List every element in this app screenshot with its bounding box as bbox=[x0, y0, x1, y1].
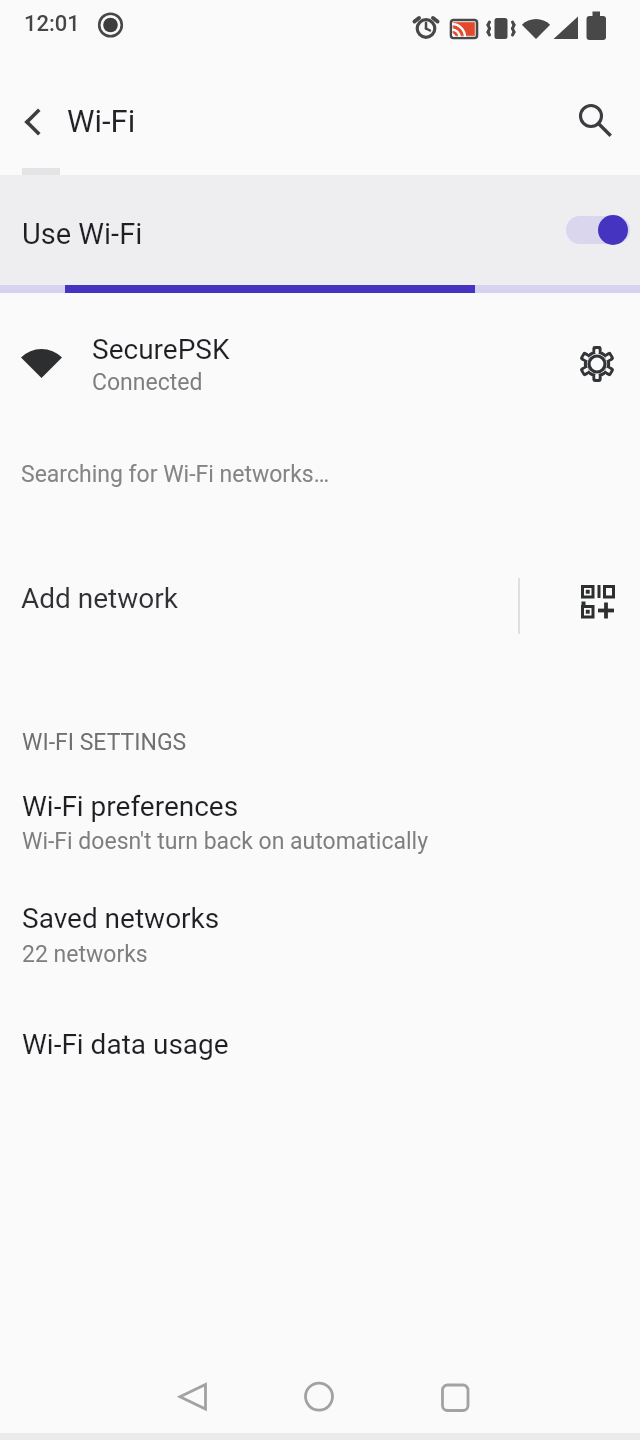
button[interactable] bbox=[163, 1366, 223, 1426]
staticText: WI-FI SETTINGS bbox=[22, 729, 187, 756]
button[interactable]: Add network bbox=[0, 556, 640, 648]
staticText: Searching for Wi-Fi networks… bbox=[21, 461, 330, 488]
staticText: 12:01 bbox=[24, 11, 80, 37]
staticText: Wi-Fi bbox=[67, 103, 136, 139]
staticText: SecurePSK bbox=[92, 333, 230, 366]
staticText: Wi-Fi doesn't turn back on automatically bbox=[22, 828, 429, 855]
staticText: Connected bbox=[92, 369, 203, 396]
staticText: Saved networks bbox=[22, 902, 220, 935]
staticText: Use Wi-Fi bbox=[22, 217, 143, 251]
button[interactable]: Saved networks bbox=[0, 883, 640, 983]
button[interactable]: Use Wi-Fi bbox=[0, 175, 640, 285]
button[interactable] bbox=[6, 96, 58, 148]
button[interactable]: Wi-Fi preferences bbox=[0, 770, 640, 870]
button[interactable]: Wi-Fi data usage bbox=[0, 1008, 640, 1078]
staticText: Wi-Fi data usage bbox=[22, 1028, 229, 1061]
button[interactable]: SecurePSK bbox=[0, 305, 640, 430]
staticText: 22 networks bbox=[22, 941, 148, 968]
button[interactable] bbox=[425, 1366, 485, 1426]
staticText: Wi-Fi preferences bbox=[22, 790, 239, 823]
button[interactable] bbox=[570, 90, 622, 142]
button[interactable] bbox=[289, 1366, 349, 1426]
staticText: Add network bbox=[21, 582, 178, 615]
